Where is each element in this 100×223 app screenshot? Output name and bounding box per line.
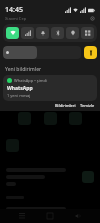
button[interactable]: Home (44, 210, 56, 222)
staticText: Xiaomi Cep (5, 16, 27, 21)
staticText: WhatsApp • şimdi (14, 78, 48, 83)
button[interactable]: Settings (90, 16, 95, 21)
staticText: WhatsApp (7, 85, 33, 92)
button[interactable]: Temizle (80, 103, 95, 108)
button[interactable]: WhatsApp • şimdi (3, 75, 97, 101)
button[interactable]: Do not disturb (36, 27, 49, 39)
button[interactable]: Bildirimleri (55, 103, 76, 108)
button[interactable]: Brightness (3, 46, 81, 59)
button[interactable]: Recents (16, 210, 28, 222)
staticText: 14:45 (5, 5, 23, 15)
button[interactable]: Location (66, 27, 79, 39)
button[interactable]: Bluetooth (51, 27, 64, 39)
button[interactable]: Wi-Fi (6, 27, 19, 39)
button[interactable]: Flashlight (84, 46, 97, 59)
button[interactable]: Calculator (81, 27, 94, 39)
staticText: 1 yeni mesaj (7, 93, 31, 98)
button[interactable]: Back (72, 210, 84, 222)
button[interactable]: Mobile data (21, 27, 34, 39)
staticText: Yeni bildirimler (5, 66, 42, 73)
